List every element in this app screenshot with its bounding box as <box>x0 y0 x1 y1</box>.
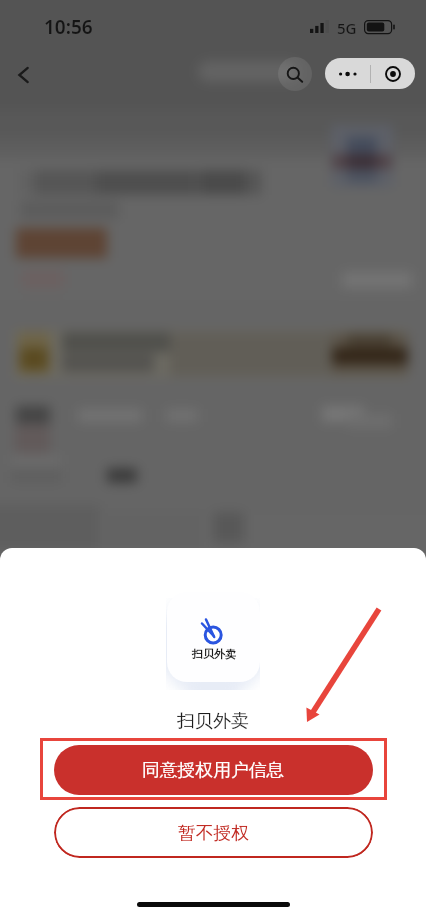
button[interactable]: Back <box>3 56 40 93</box>
staticText: 扫贝外卖 <box>192 647 236 661</box>
staticText: 扫贝外卖 <box>177 710 249 733</box>
button[interactable]: 暂不授权 <box>54 807 373 858</box>
staticText: 暂不授权 <box>178 822 250 844</box>
staticText: 5G <box>337 18 357 38</box>
button[interactable]: Search <box>278 57 312 91</box>
button[interactable]: Close mini program <box>371 58 415 89</box>
staticText: 同意授权用户信息 <box>142 759 285 781</box>
button[interactable]: 同意授权用户信息 <box>54 745 373 795</box>
button[interactable]: More <box>325 58 370 89</box>
staticText: 10:56 <box>44 14 93 40</box>
